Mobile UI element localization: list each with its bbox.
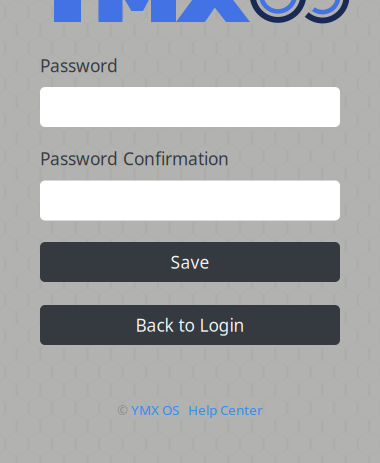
staticText: YMX OS (131, 401, 179, 419)
staticText: Password Confirmation (40, 147, 229, 170)
button[interactable]: Back to Login (40, 305, 340, 345)
button[interactable]: Save (40, 242, 340, 282)
staticText: Save (170, 250, 209, 273)
staticText: Help Center (188, 401, 263, 419)
button[interactable]: YMX OS (131, 401, 179, 419)
staticText: Back to Login (135, 313, 244, 336)
staticText: Password (40, 54, 118, 77)
button[interactable]: Help Center (188, 401, 263, 419)
staticText: © (117, 401, 128, 419)
